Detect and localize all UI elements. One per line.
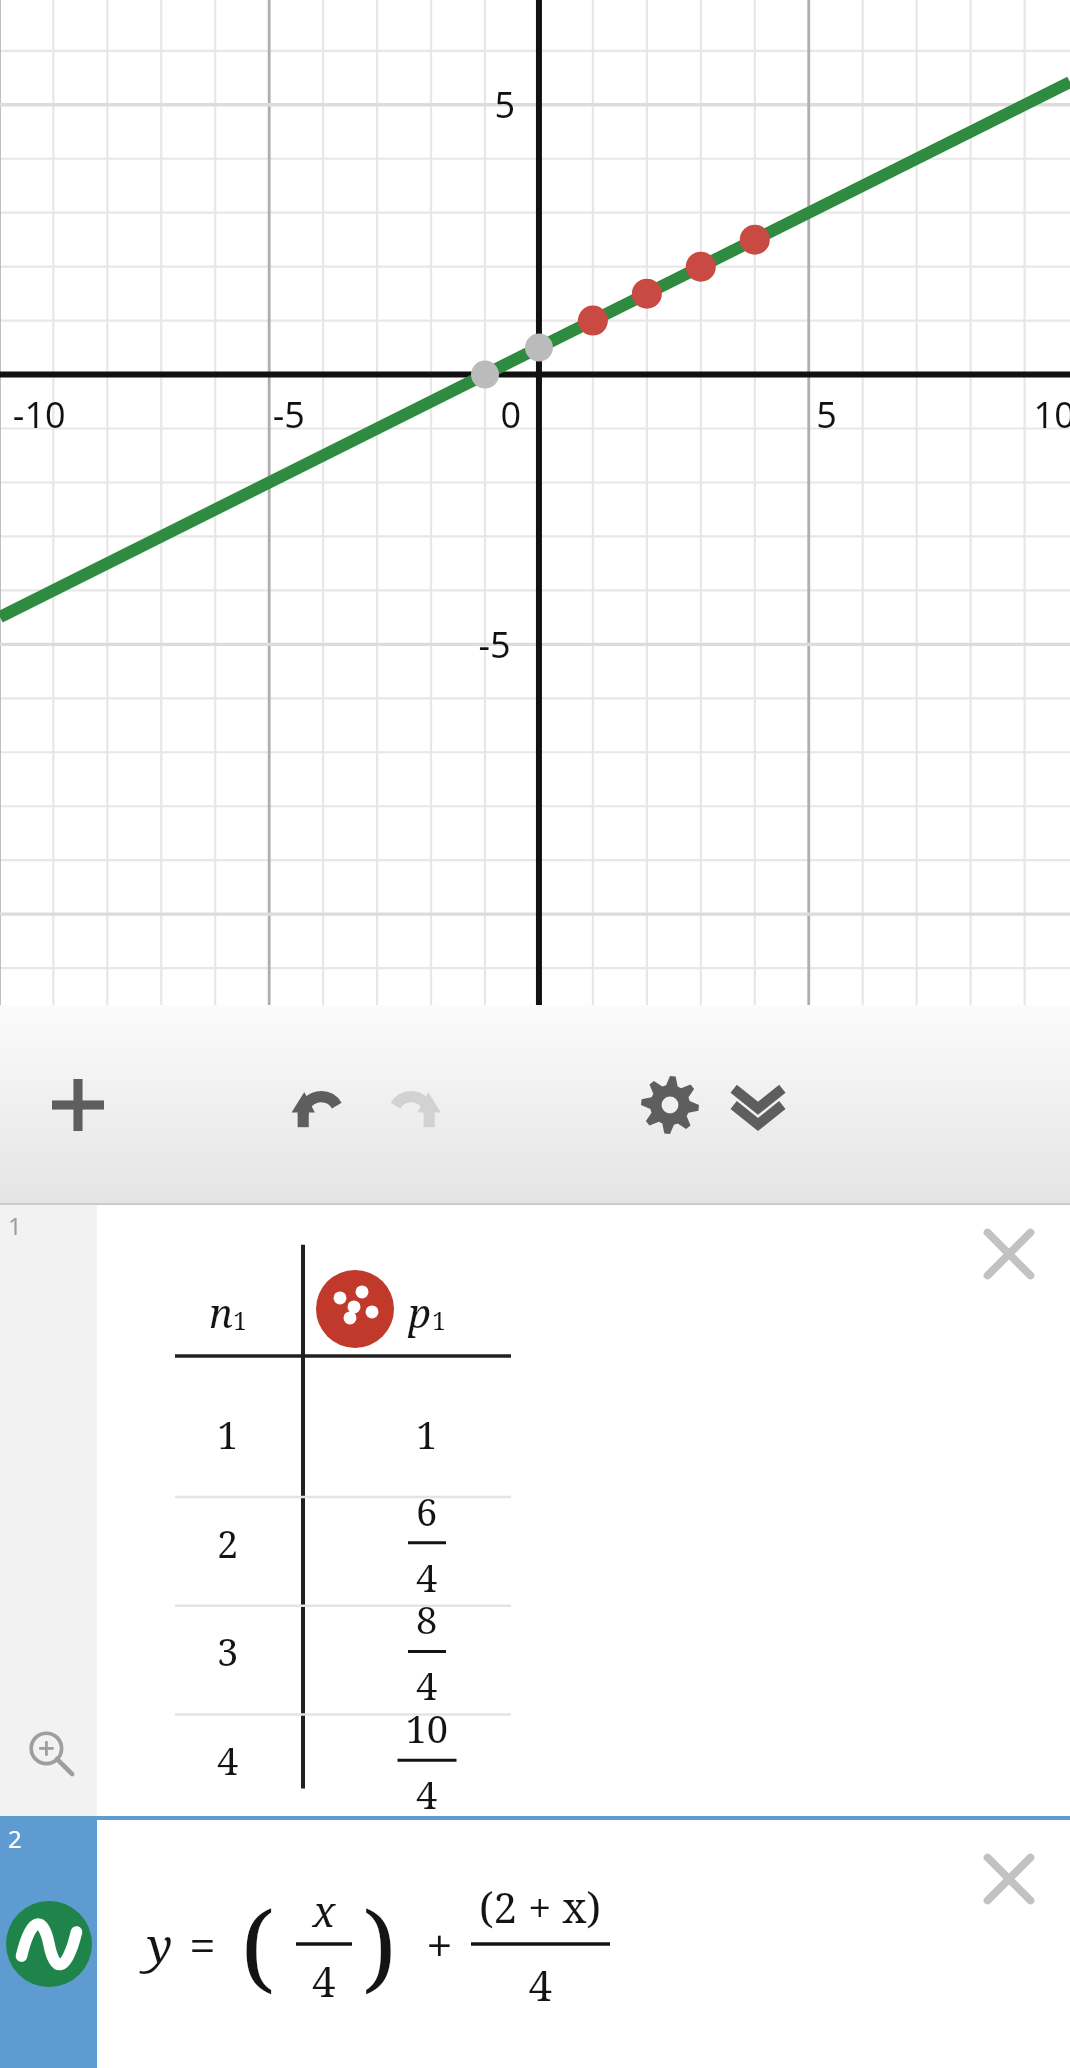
button[interactable]: Undo xyxy=(272,1057,368,1153)
button[interactable]: Settings xyxy=(622,1057,718,1153)
button[interactable]: Add expression xyxy=(30,1057,126,1153)
staticText: 1 xyxy=(8,1209,22,1242)
button[interactable]: Expression 1 xyxy=(0,1205,97,1816)
button[interactable]: Zoom to fit table xyxy=(18,1720,84,1786)
button[interactable]: Delete expression 2 xyxy=(966,1836,1052,1922)
staticText: 2 xyxy=(8,1822,22,1855)
button[interactable]: Toggle graph for expression 2 xyxy=(0,1820,97,2068)
button[interactable]: Delete table xyxy=(966,1211,1052,1297)
button[interactable]: Collapse keypad xyxy=(710,1057,806,1153)
button[interactable]: Redo xyxy=(362,1057,458,1153)
